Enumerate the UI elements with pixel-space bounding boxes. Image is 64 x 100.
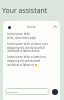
staticText: Lorem ipsum dolor sit amet con adipiscin… xyxy=(7,55,46,63)
button[interactable]: Message xyxy=(5,88,50,95)
staticText: Lorem ipsum dolor sit amet, cons adipisc… xyxy=(7,42,48,53)
staticText: Your assistant xyxy=(2,6,48,15)
staticText: Message xyxy=(7,90,18,93)
staticText: Lorem ipsum dolor amet, consectetur adip… xyxy=(7,32,36,40)
button[interactable]: Assistant xyxy=(8,26,11,29)
staticText: incididunt ut labore et xyxy=(7,63,35,67)
button[interactable]: Send xyxy=(52,89,58,95)
button[interactable]: More options xyxy=(53,25,57,29)
staticText: Lorem xyxy=(27,25,36,29)
